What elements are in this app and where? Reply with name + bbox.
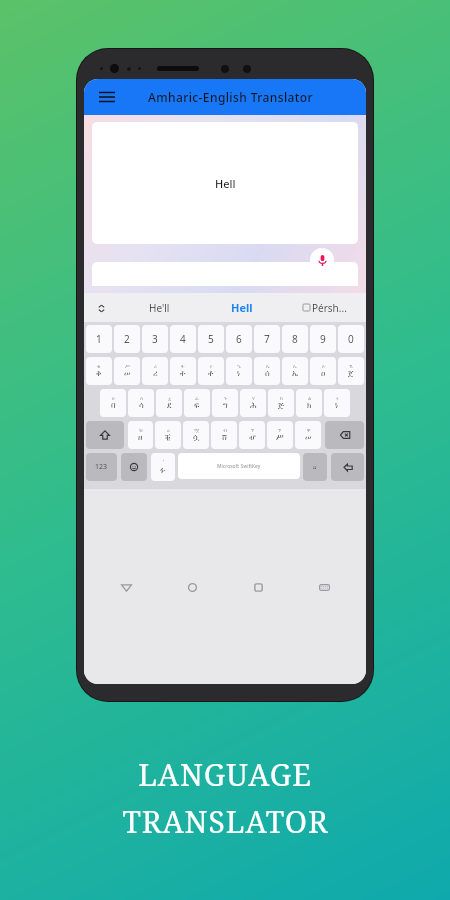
staticText: ጎ	[336, 396, 339, 401]
staticText: ቶ	[208, 370, 214, 378]
button[interactable]: 5	[198, 325, 224, 353]
button[interactable]: Voice input	[310, 248, 334, 272]
staticText: ረ	[154, 364, 157, 369]
button[interactable]: Emoji	[121, 453, 147, 481]
button[interactable]: Recent apps	[248, 577, 268, 597]
button[interactable]: ጎ	[324, 389, 350, 417]
button[interactable]: ኢ	[282, 357, 308, 385]
button[interactable]: 7	[254, 325, 280, 353]
button[interactable]: የ	[198, 357, 224, 385]
button[interactable]: Open navigation menu	[84, 79, 366, 115]
button[interactable]: 2	[114, 325, 140, 353]
button[interactable]: ኘ	[239, 421, 265, 449]
button[interactable]: He'll	[118, 293, 200, 322]
button[interactable]: Shift	[86, 421, 124, 449]
button[interactable]: ።	[303, 453, 327, 481]
button[interactable]: ል	[296, 389, 322, 417]
staticText: TRANSLATOR	[122, 801, 329, 842]
staticText: ኘ	[278, 428, 282, 433]
button[interactable]: ት	[170, 357, 196, 385]
button[interactable]: ኦ	[310, 357, 336, 385]
button[interactable]: 1	[86, 325, 112, 353]
staticText: ፍ	[194, 402, 200, 410]
staticText: ሠ	[305, 434, 312, 442]
staticText: ሕ	[250, 402, 257, 410]
button[interactable]: ጉ	[212, 389, 238, 417]
button[interactable]: ብ	[211, 421, 237, 449]
button[interactable]: Home	[182, 577, 202, 597]
staticText: ሃ	[252, 396, 255, 401]
staticText: ዘ	[138, 434, 143, 442]
staticText: Microsoft SwiftKey	[217, 463, 261, 470]
button[interactable]: ዝ	[128, 421, 153, 449]
button[interactable]	[92, 262, 358, 286]
button[interactable]: ጸ	[155, 421, 181, 449]
button[interactable]: ኘ	[267, 421, 293, 449]
staticText: ኤ	[292, 370, 299, 378]
staticText: ግ	[223, 402, 228, 410]
button[interactable]: ሀ	[100, 389, 126, 417]
staticText: ሰ	[265, 370, 270, 378]
staticText: ቸ	[307, 428, 311, 433]
staticText: 8	[292, 332, 298, 346]
button[interactable]: 0	[338, 325, 364, 353]
button[interactable]: ኡ	[254, 357, 280, 385]
button[interactable]: ሥ	[114, 357, 140, 385]
staticText: ከ	[280, 396, 283, 401]
staticText: ደ	[167, 402, 172, 410]
button[interactable]: ከ	[268, 389, 294, 417]
staticText: ኦ	[322, 364, 325, 369]
staticText: Amharic-English Translator	[148, 89, 313, 105]
button[interactable]: ቸ	[295, 421, 321, 449]
button[interactable]: Hell	[92, 122, 358, 244]
button[interactable]: ሃ	[240, 389, 266, 417]
staticText: ሰ	[140, 396, 143, 401]
button[interactable]: Expand suggestions	[84, 294, 118, 322]
staticText: He'll	[149, 301, 170, 315]
button[interactable]: ዸ	[156, 389, 182, 417]
button[interactable]: Open navigation menu	[96, 86, 118, 108]
staticText: ጉ	[224, 396, 228, 401]
staticText: ቁ	[97, 364, 101, 369]
staticText: 3	[152, 332, 158, 346]
button[interactable]: Hell	[200, 293, 283, 322]
button[interactable]: 6	[226, 325, 252, 353]
staticText: ት	[181, 364, 185, 369]
button[interactable]: Pérsh...	[283, 293, 366, 322]
button[interactable]: ኁ	[226, 357, 252, 385]
staticText: ኡ	[266, 364, 270, 369]
button[interactable]: 8	[282, 325, 308, 353]
staticText: ኧ	[349, 364, 353, 369]
button[interactable]: ፈ	[184, 389, 210, 417]
button[interactable]: Back	[116, 577, 136, 597]
staticText: Hell	[215, 176, 236, 191]
staticText: ሷ	[193, 434, 200, 442]
staticText: ።	[313, 464, 317, 471]
staticText: ዝ	[139, 428, 143, 433]
staticText: ሠ	[124, 370, 131, 378]
staticText: 123	[95, 462, 108, 472]
button[interactable]: 123	[86, 453, 117, 481]
staticText: ኘ	[251, 428, 255, 433]
button[interactable]: ኧ	[338, 357, 364, 385]
button[interactable]: ረ	[142, 357, 168, 385]
button[interactable]: Backspace	[325, 421, 364, 449]
button[interactable]: ʼ	[151, 453, 175, 481]
button[interactable]: Microsoft SwiftKey	[178, 453, 300, 479]
button[interactable]: ቁ	[86, 357, 112, 385]
staticText: 9	[320, 332, 326, 346]
button[interactable]: ሰ	[128, 389, 154, 417]
staticText: ሀ	[112, 396, 115, 401]
staticText: 7	[264, 332, 270, 346]
button[interactable]: ሟ	[183, 421, 209, 449]
button[interactable]: Switch keyboard	[314, 577, 334, 597]
staticText: ክ	[307, 402, 312, 410]
staticText: በ	[111, 402, 116, 410]
button[interactable]: 3	[142, 325, 168, 353]
button[interactable]: 4	[170, 325, 196, 353]
button[interactable]: 9	[310, 325, 336, 353]
staticText: Hell	[231, 300, 253, 315]
staticText: ዐ	[321, 370, 326, 378]
staticText: ሸ	[222, 434, 227, 442]
button[interactable]: Enter	[331, 453, 364, 481]
